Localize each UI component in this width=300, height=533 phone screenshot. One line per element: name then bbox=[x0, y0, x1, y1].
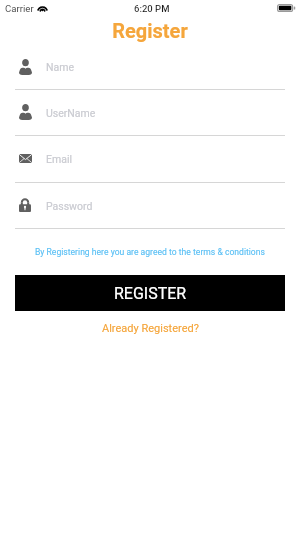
staticText: UserName bbox=[46, 107, 96, 119]
button[interactable]: REGISTER bbox=[15, 275, 285, 311]
button[interactable] bbox=[0, 65, 300, 90]
staticText: REGISTER bbox=[114, 284, 187, 303]
button[interactable] bbox=[0, 158, 300, 183]
staticText: Password bbox=[46, 200, 93, 212]
staticText: Carrier bbox=[5, 3, 34, 14]
staticText: By Registering here you are agreed to th… bbox=[35, 247, 265, 257]
staticText: 6:20 PM bbox=[134, 3, 170, 14]
other: Password bbox=[19, 198, 31, 212]
other: Name bbox=[19, 59, 32, 75]
staticText: Email bbox=[46, 153, 72, 165]
button[interactable] bbox=[0, 111, 300, 136]
button[interactable]: By Registering here you are agreed to th… bbox=[0, 243, 300, 261]
staticText: Register bbox=[0, 19, 300, 42]
other: Email bbox=[19, 154, 32, 163]
staticText: Name bbox=[46, 61, 74, 73]
button[interactable]: Already Registered? bbox=[102, 322, 199, 335]
other: User name bbox=[19, 104, 32, 120]
button[interactable] bbox=[0, 204, 300, 229]
